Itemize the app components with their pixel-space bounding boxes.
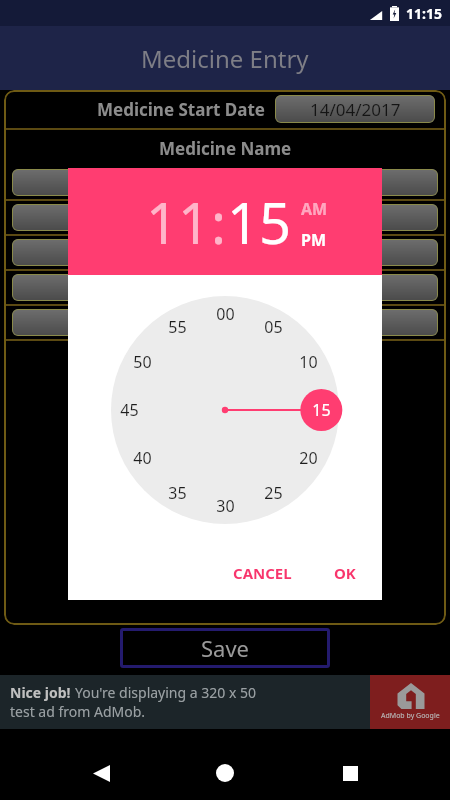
staticText: AdMob by Google <box>381 711 440 721</box>
staticText: Save <box>201 633 250 663</box>
staticText: 05 <box>264 316 283 338</box>
staticText: : <box>211 184 227 260</box>
button[interactable]: 10 <box>299 351 318 373</box>
staticText: 11:15 <box>406 4 442 23</box>
staticText: Nice job! <box>10 683 75 702</box>
staticText: 55 <box>168 316 187 338</box>
button[interactable] <box>12 274 438 301</box>
button[interactable] <box>12 309 438 336</box>
staticText: 40 <box>133 447 152 469</box>
staticText: 45 <box>120 399 139 421</box>
staticText: Medicine Name <box>159 137 292 160</box>
button[interactable]: 05 <box>264 316 283 338</box>
button[interactable]: AM <box>301 198 328 220</box>
button[interactable]: 20 <box>299 447 318 469</box>
button[interactable] <box>12 169 438 196</box>
staticText: 14/04/2017 <box>310 98 401 121</box>
button[interactable]: 15 <box>312 399 331 421</box>
button[interactable]: OK <box>324 555 366 591</box>
staticText: test ad from AdMob. <box>10 702 146 721</box>
button[interactable]: 35 <box>168 482 187 504</box>
button[interactable] <box>12 204 438 231</box>
button[interactable]: 50 <box>133 351 152 373</box>
staticText: 20 <box>299 447 318 469</box>
button[interactable]: Home <box>201 749 249 797</box>
button[interactable]: 25 <box>264 482 283 504</box>
staticText: Medicine Start Date <box>97 98 265 121</box>
button[interactable]: PM <box>301 229 327 251</box>
staticText: Medicine Entry <box>141 42 309 75</box>
button[interactable]: 00 <box>216 303 235 325</box>
staticText: 10 <box>299 351 318 373</box>
staticText: 00 <box>216 303 235 325</box>
button[interactable]: Save <box>120 628 330 668</box>
staticText: 35 <box>168 482 187 504</box>
button[interactable]: 14/04/2017 <box>275 95 435 123</box>
button[interactable]: CANCEL <box>223 555 302 591</box>
staticText: 25 <box>264 482 283 504</box>
staticText: CANCEL <box>233 563 292 583</box>
button[interactable]: 55 <box>168 316 187 338</box>
button[interactable]: Recent apps <box>326 749 374 797</box>
staticText: 50 <box>133 351 152 373</box>
button[interactable]: 15 <box>227 184 292 260</box>
button[interactable]: 11 <box>146 184 211 260</box>
button[interactable] <box>12 239 438 266</box>
button[interactable]: 45 <box>120 399 139 421</box>
staticText: 15 <box>312 399 331 421</box>
button[interactable]: Back <box>77 749 125 797</box>
button[interactable]: 30 <box>216 495 235 517</box>
staticText: You're displaying a 320 x 50 <box>75 683 256 702</box>
staticText: 30 <box>216 495 235 517</box>
staticText: OK <box>334 563 356 583</box>
button[interactable]: 40 <box>133 447 152 469</box>
